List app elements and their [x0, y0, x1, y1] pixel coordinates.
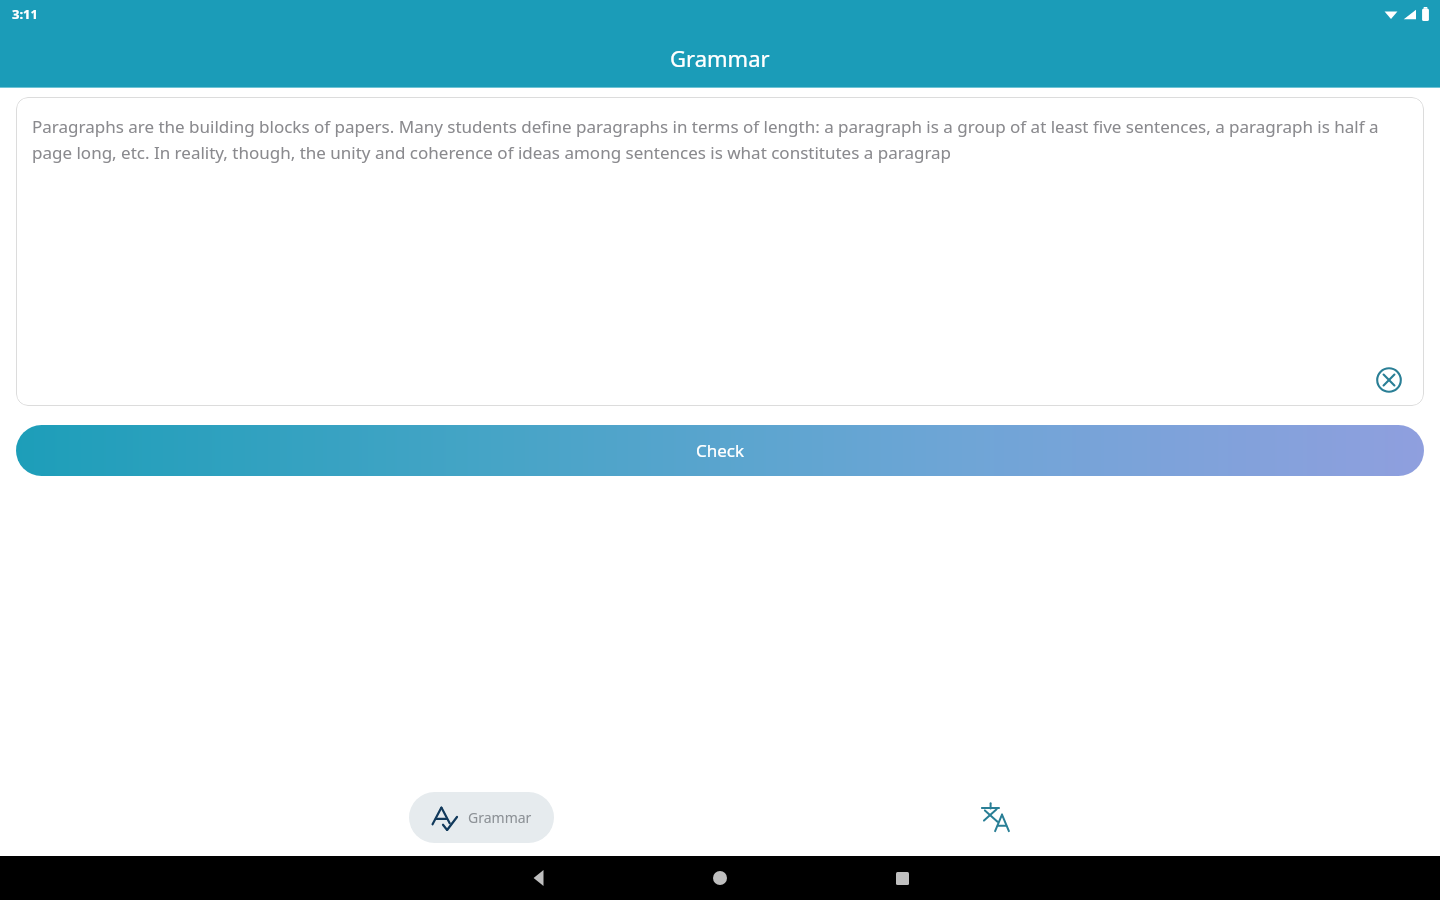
button[interactable]: Recent apps — [878, 856, 926, 900]
staticText: 3:11 — [12, 5, 38, 23]
button[interactable]: Home — [696, 856, 744, 900]
staticText: Grammar — [670, 43, 770, 73]
staticText: Check — [696, 439, 745, 462]
button[interactable]: Clear text — [1372, 363, 1406, 397]
staticText: Paragraphs are the building blocks of pa… — [32, 115, 1404, 164]
button[interactable]: Grammar — [409, 792, 554, 843]
button[interactable]: Check — [16, 425, 1424, 476]
button[interactable]: Back — [516, 856, 564, 900]
button[interactable]: Translate — [972, 793, 1020, 841]
staticText: Grammar — [468, 808, 532, 827]
button[interactable]: Paragraphs are the building blocks of pa… — [16, 97, 1424, 406]
